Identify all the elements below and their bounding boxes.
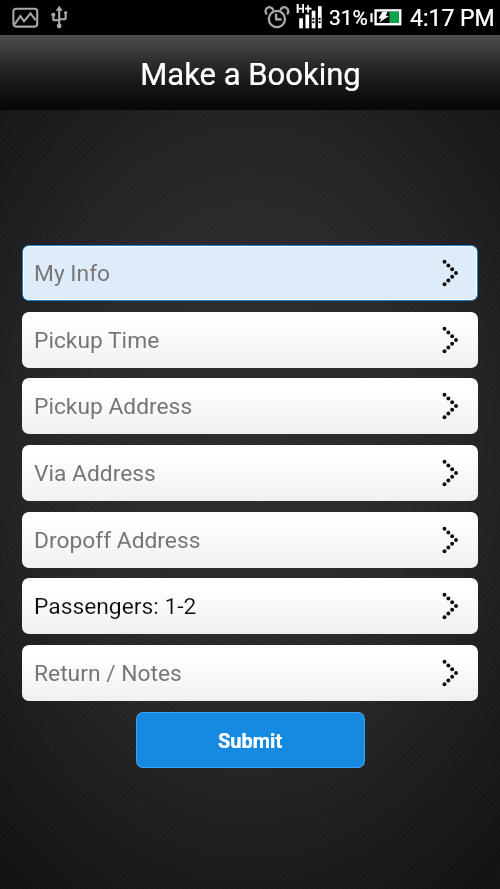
staticText: Submit bbox=[218, 729, 283, 752]
other: Open Dropoff Address bbox=[434, 522, 470, 558]
button[interactable]: Dropoff Address bbox=[22, 512, 478, 568]
button[interactable]: Return / Notes bbox=[22, 645, 478, 701]
other: Open Return / Notes bbox=[434, 655, 470, 691]
other: Open My Info bbox=[434, 255, 470, 291]
staticText: 31% bbox=[329, 6, 368, 31]
button[interactable]: Passengers: 1-2 bbox=[22, 578, 478, 634]
other: Open Via Address bbox=[434, 455, 470, 491]
staticText: H+ bbox=[296, 1, 312, 16]
staticText: 4:17 PM bbox=[410, 5, 495, 32]
staticText: Make a Booking bbox=[140, 56, 361, 92]
staticText: Via Address bbox=[34, 460, 156, 487]
button[interactable]: Via Address bbox=[22, 445, 478, 501]
staticText: Passengers: 1-2 bbox=[34, 593, 197, 620]
button[interactable]: Submit bbox=[137, 713, 364, 767]
other: Open Passengers: 1-2 bbox=[434, 588, 470, 624]
staticText: My Info bbox=[34, 260, 111, 287]
button[interactable]: My Info bbox=[22, 245, 478, 301]
other: Open Pickup Time bbox=[434, 322, 470, 358]
staticText: Pickup Time bbox=[34, 327, 160, 354]
staticText: Dropoff Address bbox=[34, 527, 201, 554]
staticText: Return / Notes bbox=[34, 660, 182, 687]
staticText: Pickup Address bbox=[34, 393, 193, 420]
button[interactable]: Pickup Time bbox=[22, 312, 478, 368]
button[interactable]: Pickup Address bbox=[22, 378, 478, 434]
other: Open Pickup Address bbox=[434, 388, 470, 424]
